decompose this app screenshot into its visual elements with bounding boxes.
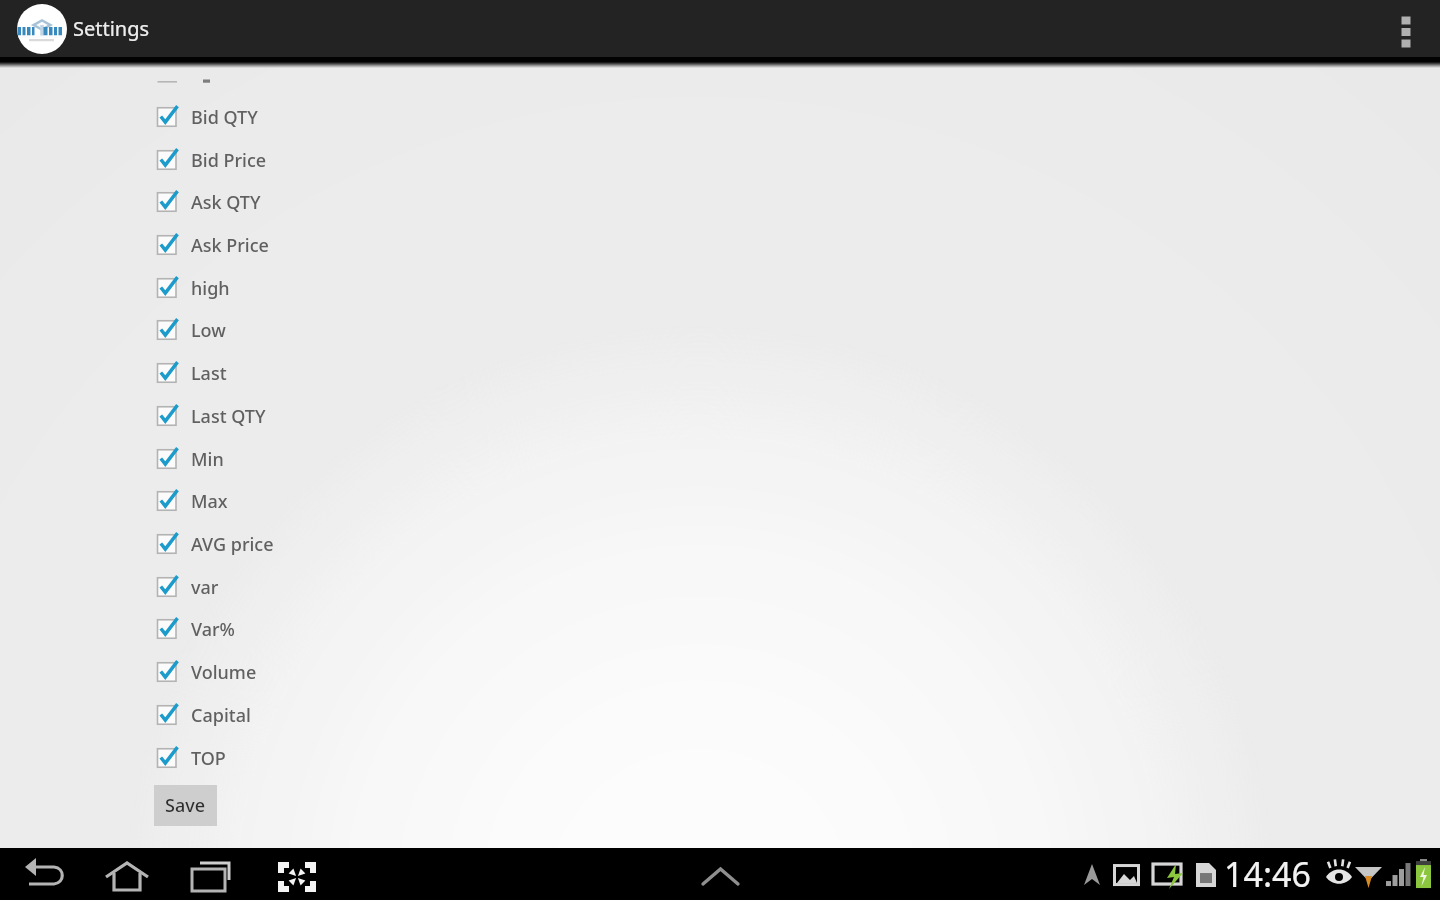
button[interactable]: Bid Price (0, 139, 1440, 181)
button[interactable]: Ask QTY (0, 181, 1440, 223)
staticText: AVG price (191, 532, 274, 557)
staticText: Min (191, 447, 224, 472)
button[interactable]: App icon, navigate up (17, 4, 67, 54)
button[interactable]: Bid QTY (0, 96, 1440, 138)
button[interactable]: high (0, 267, 1440, 309)
button[interactable]: AVG price (0, 523, 1440, 565)
button[interactable]: Recent apps (188, 848, 234, 900)
button[interactable]: Min (0, 438, 1440, 480)
staticText: var (191, 575, 219, 600)
staticText: Capital (191, 703, 251, 728)
button[interactable]: More options (1378, 0, 1440, 57)
button[interactable]: Ask Price (0, 224, 1440, 266)
button[interactable]: Last (0, 352, 1440, 394)
staticText: Low (191, 318, 226, 343)
button[interactable]: Capital (0, 694, 1440, 736)
staticText: Ask QTY (191, 190, 261, 215)
button[interactable]: Home (104, 848, 150, 900)
button[interactable]: Partially visible option (157, 66, 377, 84)
button[interactable]: Last QTY (0, 395, 1440, 437)
staticText: Last (191, 361, 227, 386)
staticText: Volume (191, 660, 257, 685)
staticText: Var% (191, 617, 235, 642)
staticText: Bid Price (191, 148, 267, 173)
button[interactable]: Show navigation (698, 848, 743, 900)
button[interactable]: Back (25, 848, 71, 900)
staticText: Settings (73, 15, 150, 42)
staticText: Save (165, 793, 206, 818)
staticText: Last QTY (191, 404, 266, 429)
button[interactable]: var (0, 566, 1440, 608)
button[interactable]: Max (0, 480, 1440, 522)
staticText: 14:46 (1224, 851, 1311, 897)
staticText: Ask Price (191, 233, 269, 258)
button[interactable]: Save (154, 785, 217, 826)
staticText: TOP (191, 746, 226, 771)
button[interactable]: Volume (0, 651, 1440, 693)
staticText: high (191, 276, 230, 301)
button[interactable]: Var% (0, 608, 1440, 650)
staticText: Bid QTY (191, 105, 258, 130)
button[interactable]: Screenshot (274, 848, 320, 900)
button[interactable]: TOP (0, 737, 1440, 779)
staticText: Max (191, 489, 228, 514)
button[interactable]: Low (0, 309, 1440, 351)
